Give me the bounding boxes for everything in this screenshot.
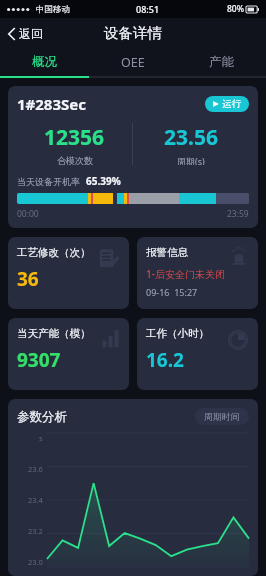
staticText: 设备详情 [104, 24, 162, 42]
button[interactable]: 概况 [0, 48, 88, 76]
button[interactable]: 参数分析 [8, 399, 258, 576]
staticText: s [39, 433, 43, 443]
staticText: 08:51 [136, 3, 160, 15]
staticText: 参数分析 [17, 409, 67, 425]
staticText: 产能 [209, 54, 234, 70]
staticText: 36 [17, 266, 39, 292]
staticText: 23.2 [28, 526, 43, 536]
button[interactable]: 产能 [177, 48, 266, 76]
staticText: 09-16 15:27 [146, 286, 198, 298]
button[interactable]: 周期时间 [195, 408, 249, 425]
staticText: 12356 [44, 123, 105, 152]
other: Process edits [98, 248, 120, 270]
staticText: 1#283Sec [17, 94, 86, 114]
staticText: 工作（小时） [146, 327, 209, 340]
staticText: 65.39% [86, 174, 121, 188]
button[interactable]: 运行 [205, 96, 249, 112]
staticText: 23:59 [227, 208, 249, 220]
staticText: 周期(s) [177, 155, 205, 165]
staticText: 概况 [32, 54, 57, 70]
button[interactable]: 返回 [0, 22, 51, 45]
other: Alarm [229, 246, 249, 266]
staticText: 返回 [19, 26, 43, 41]
staticText: 1-后安全门未关闭 [146, 267, 225, 281]
button[interactable]: OEE [88, 48, 177, 76]
button[interactable]: 报警信息 [137, 237, 258, 309]
staticText: 当天产能（模） [17, 327, 91, 340]
button[interactable]: 工艺修改（次） [8, 237, 129, 309]
staticText: 9307 [17, 347, 61, 373]
button[interactable]: 工作（小时） [137, 318, 258, 390]
staticText: 23.4 [28, 495, 43, 505]
button[interactable]: 1#283Sec [8, 86, 258, 228]
staticText: 16.2 [146, 347, 184, 373]
button[interactable]: 当天产能（模） [8, 318, 129, 390]
other: Working hours [227, 329, 249, 351]
staticText: 运行 [222, 98, 241, 110]
staticText: 23.56 [164, 123, 218, 152]
staticText: 23.0 [28, 557, 43, 567]
staticText: 周期时间 [204, 411, 240, 422]
staticText: 工艺修改（次） [17, 246, 91, 259]
staticText: 当天设备开机率 [17, 176, 80, 187]
staticText: OEE [121, 54, 145, 71]
other: Output [100, 329, 120, 349]
staticText: 报警信息 [146, 246, 188, 259]
staticText: 合模次数 [57, 155, 93, 165]
staticText: 00:00 [17, 208, 39, 220]
staticText: 23.6 [28, 464, 43, 474]
staticText: 中国移动 [36, 4, 70, 15]
staticText: 80% [227, 3, 244, 15]
